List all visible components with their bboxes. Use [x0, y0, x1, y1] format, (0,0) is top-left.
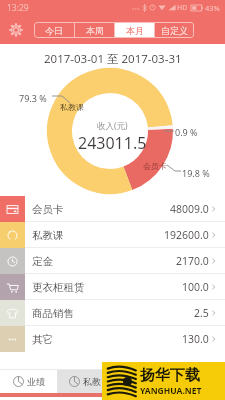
- staticText: 43%: [205, 3, 220, 13]
- staticText: 79.3 %: [19, 92, 47, 104]
- button[interactable]: 会员卡: [0, 196, 225, 222]
- button[interactable]: 私教课: [0, 222, 225, 248]
- staticText: 会员: [139, 376, 157, 387]
- staticText: 今日: [45, 25, 63, 36]
- staticText: 本月: [126, 25, 144, 36]
- button[interactable]: 商品销售: [0, 300, 225, 326]
- staticText: 商品销售: [32, 307, 74, 320]
- staticText: 2017-03-01 至 2017-03-31: [44, 51, 182, 67]
- staticText: 0.9 %: [175, 126, 198, 138]
- button[interactable]: 自定义: [155, 22, 194, 38]
- button[interactable]: Settings: [4, 18, 28, 42]
- button[interactable]: 更衣柜租赁: [0, 274, 225, 300]
- staticText: 48009.0: [170, 202, 209, 216]
- button[interactable]: 定金: [0, 248, 225, 274]
- staticText: 会员卡: [32, 203, 64, 216]
- staticText: YANGHUA.NET: [140, 385, 202, 397]
- button[interactable]: 会员: [113, 370, 169, 393]
- staticText: 私教课: [60, 102, 84, 112]
- button[interactable]: 我的: [169, 370, 225, 393]
- staticText: 收入(元): [97, 120, 128, 132]
- button[interactable]: 私教: [57, 370, 113, 393]
- staticText: 会员卡: [143, 161, 167, 171]
- staticText: 130.0: [182, 332, 209, 346]
- staticText: 私教课: [32, 229, 64, 242]
- staticText: 本周: [86, 25, 104, 36]
- button[interactable]: 今日: [34, 22, 74, 38]
- button[interactable]: 其它: [0, 326, 225, 352]
- staticText: 定金: [32, 255, 53, 268]
- staticText: 其它: [32, 333, 53, 346]
- staticText: 更衣柜租赁: [32, 281, 85, 294]
- button[interactable]: 本月: [115, 22, 154, 38]
- staticText: 我的: [195, 376, 213, 387]
- staticText: 自定义: [161, 25, 188, 36]
- button[interactable]: 业绩: [0, 370, 57, 393]
- staticText: 192600.0: [164, 228, 209, 242]
- staticText: 13:29: [7, 2, 29, 14]
- staticText: 100.0: [182, 280, 209, 294]
- staticText: 业绩: [27, 376, 45, 387]
- staticText: 扬华下载: [140, 366, 200, 385]
- staticText: HD: [177, 3, 188, 13]
- staticText: 2.5: [194, 306, 209, 320]
- staticText: 2170.0: [176, 254, 209, 268]
- staticText: 私教: [83, 376, 101, 387]
- staticText: 19.8 %: [182, 167, 210, 179]
- button[interactable]: 本周: [75, 22, 114, 38]
- staticText: 243011.5: [78, 132, 147, 154]
